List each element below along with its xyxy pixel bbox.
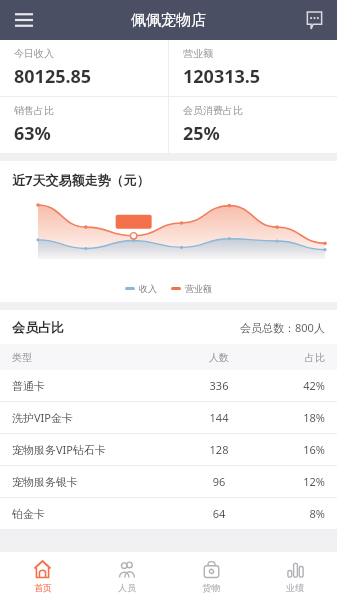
button[interactable]: 宠物服务银卡 (0, 466, 337, 497)
staticText: 120313.5 (183, 64, 261, 89)
staticText: 类型 (12, 351, 181, 364)
staticText: 宠物服务VIP钻石卡 (12, 442, 181, 457)
staticText: 8% (257, 506, 325, 521)
staticText: 96 (181, 474, 257, 489)
staticText: 16% (257, 442, 325, 457)
staticText: 人数 (181, 351, 257, 364)
staticText: 80125.85 (14, 64, 92, 89)
staticText: 营业额 (185, 283, 212, 294)
staticText: 64 (181, 506, 257, 521)
staticText: 货物 (202, 582, 220, 593)
staticText: 近7天交易额走势（元） (12, 171, 150, 189)
staticText: 今日收入 (14, 47, 54, 60)
button[interactable]: 营业额 (169, 40, 337, 96)
staticText: 18% (257, 410, 325, 425)
button[interactable]: Messages (299, 5, 329, 35)
staticText: 人员 (118, 582, 136, 593)
staticText: 业绩 (286, 582, 304, 593)
button[interactable]: 首页 (0, 552, 85, 600)
staticText: 铂金卡 (12, 507, 181, 521)
staticText: 128 (181, 442, 257, 457)
staticText: 会员占比 (12, 319, 64, 335)
button[interactable]: 会员消费占比 (169, 97, 337, 153)
staticText: 336 (181, 378, 257, 393)
staticText: 63% (14, 121, 51, 146)
staticText: 144 (181, 410, 257, 425)
staticText: 销售占比 (14, 104, 54, 117)
staticText: 42% (257, 378, 325, 393)
button[interactable]: 宠物服务VIP钻石卡 (0, 434, 337, 465)
staticText: 12% (257, 474, 325, 489)
staticText: 佩佩宠物店 (131, 11, 206, 30)
staticText: 会员总数：800人 (240, 320, 325, 335)
staticText: 普通卡 (12, 379, 181, 393)
button[interactable]: 今日收入 (0, 40, 168, 96)
button[interactable]: 人员 (85, 552, 169, 600)
staticText: 首页 (34, 582, 52, 593)
staticText: 会员消费占比 (183, 104, 243, 117)
button[interactable]: 业绩 (253, 552, 337, 600)
staticText: 宠物服务银卡 (12, 475, 181, 489)
button[interactable]: Menu (8, 4, 40, 36)
staticText: 25% (183, 121, 220, 146)
button[interactable]: 货物 (169, 552, 253, 600)
button[interactable]: 销售占比 (0, 97, 168, 153)
staticText: 收入 (139, 283, 157, 294)
button[interactable]: 铂金卡 (0, 498, 337, 529)
staticText: 营业额 (183, 47, 213, 60)
button[interactable]: 普通卡 (0, 370, 337, 401)
staticText: 占比 (257, 351, 325, 364)
button[interactable]: 洗护VIP金卡 (0, 402, 337, 433)
staticText: 洗护VIP金卡 (12, 410, 181, 425)
